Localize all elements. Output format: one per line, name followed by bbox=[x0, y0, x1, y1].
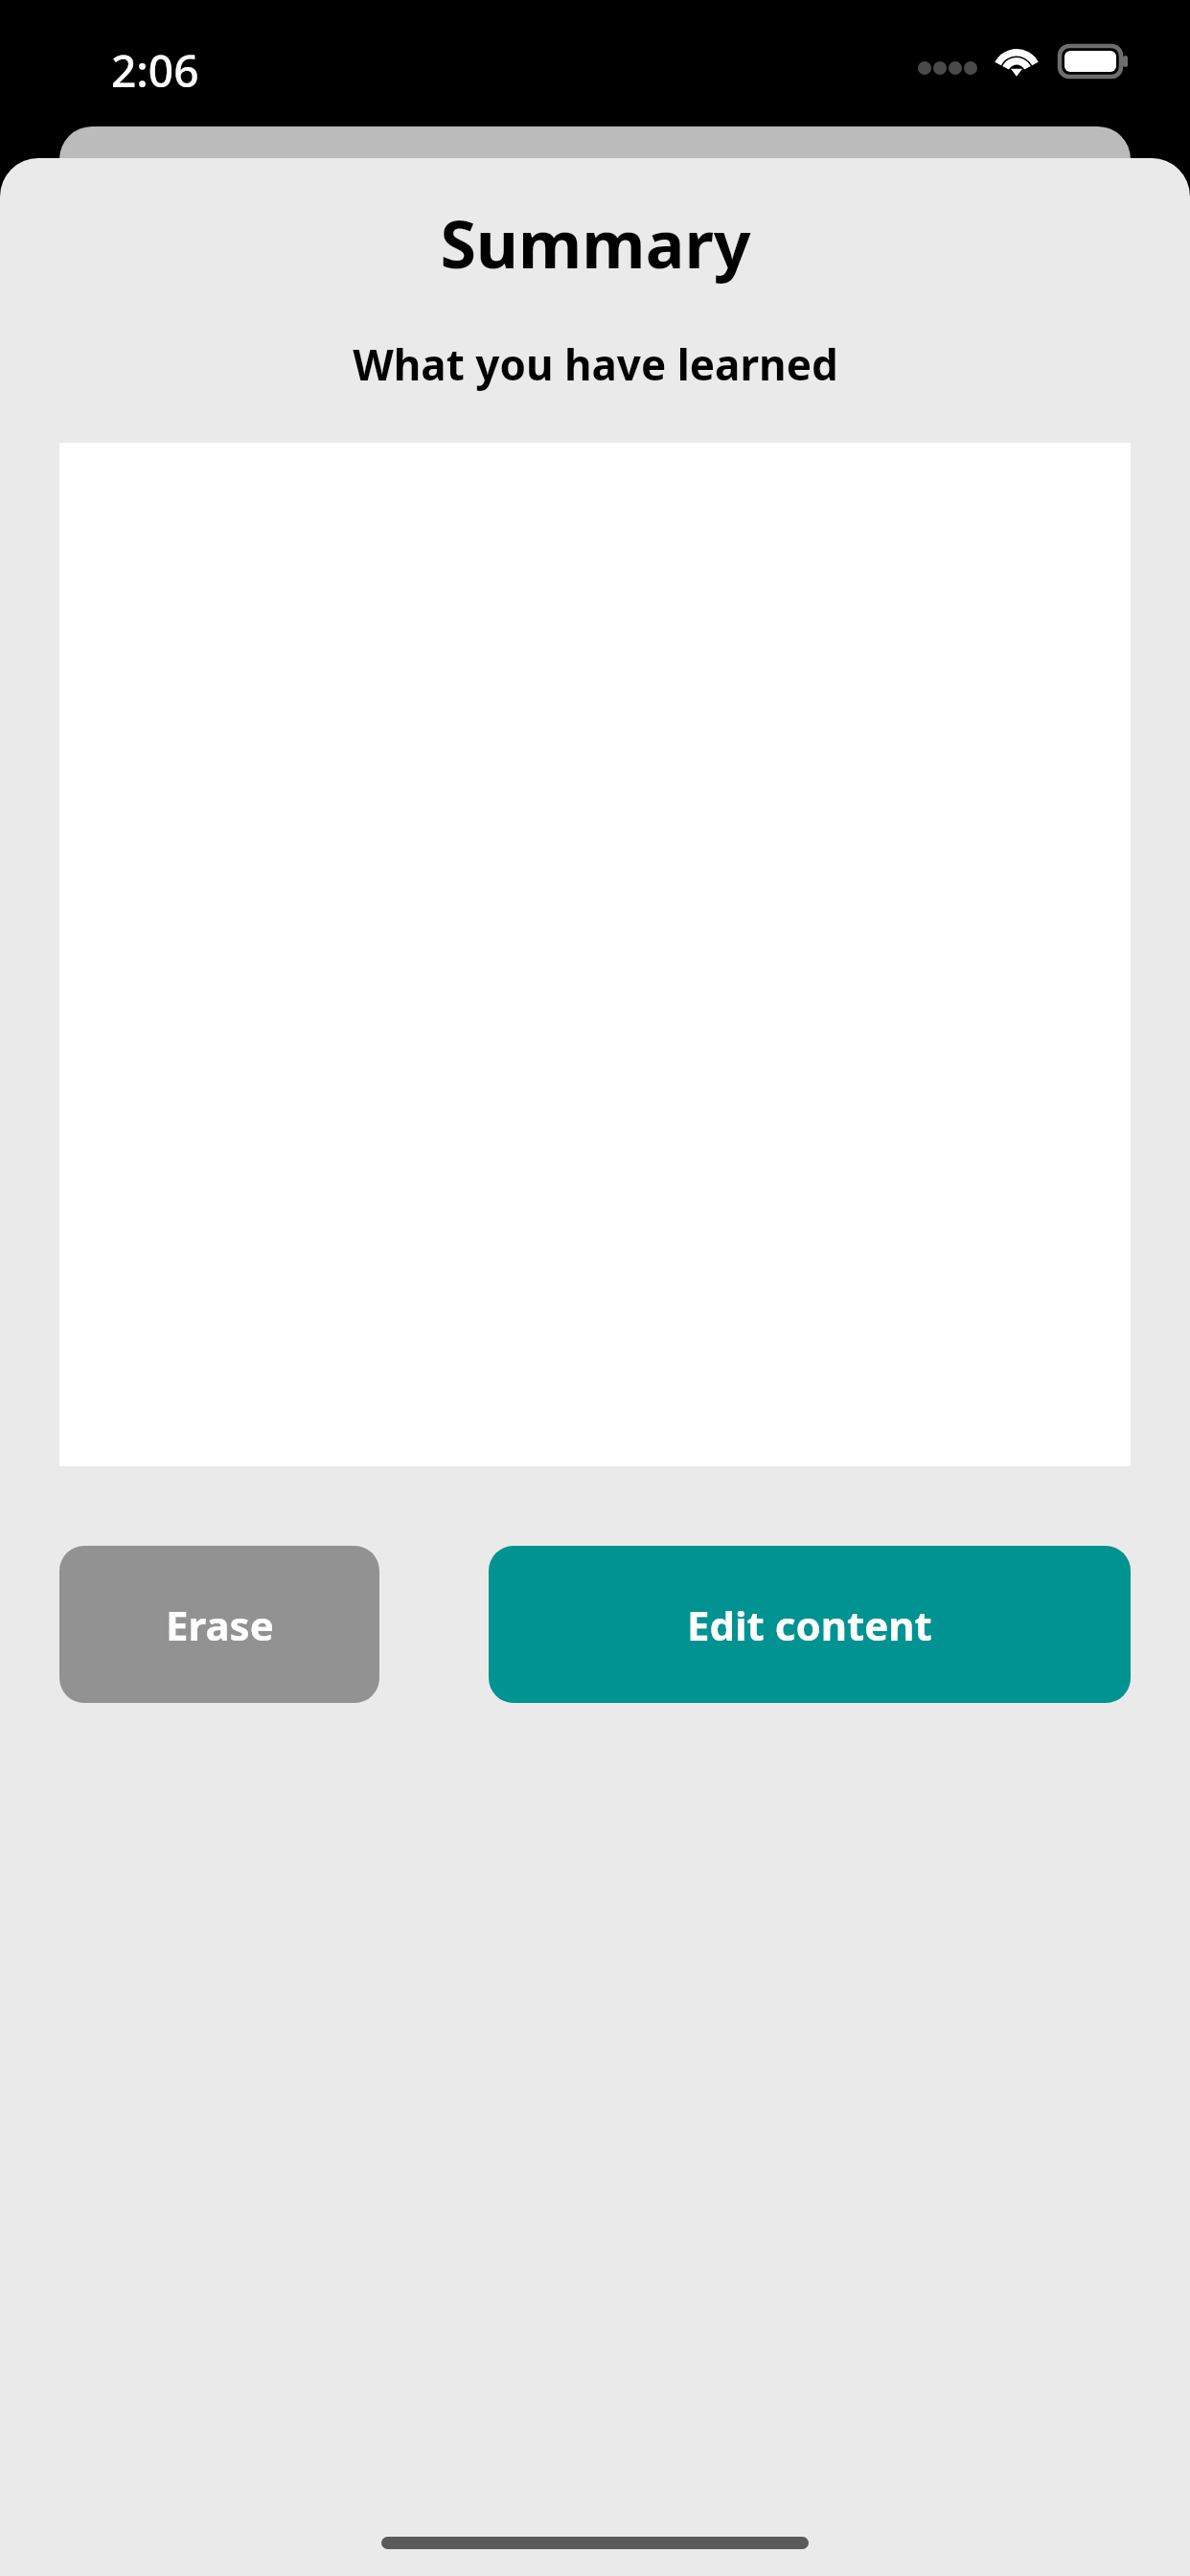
staticText: Erase bbox=[166, 1598, 274, 1652]
button[interactable]: Erase bbox=[59, 1546, 379, 1703]
button[interactable]: Edit content bbox=[489, 1546, 1131, 1703]
staticText: Edit content bbox=[687, 1598, 932, 1652]
staticText: Summary bbox=[440, 198, 751, 287]
staticText: What you have learned bbox=[353, 335, 838, 393]
staticText: 2:06 bbox=[111, 40, 199, 101]
